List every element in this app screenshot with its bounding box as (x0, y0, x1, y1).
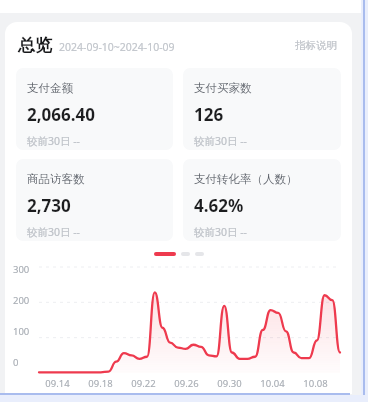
staticText: 10.04 (260, 377, 285, 390)
staticText: 0 (13, 356, 39, 369)
staticText: 10.08 (303, 377, 328, 390)
staticText: 200 (13, 294, 39, 307)
staticText: 300 (13, 263, 39, 276)
staticText: 09.22 (131, 377, 156, 390)
button[interactable]: 指标说明 (293, 36, 339, 55)
staticText: 2,730 (27, 194, 71, 217)
button[interactable]: 支付转化率（人数） (183, 159, 341, 241)
staticText: 支付买家数 (194, 81, 252, 95)
button[interactable] (181, 252, 190, 256)
staticText: 100 (13, 325, 39, 338)
staticText: 支付转化率（人数） (194, 172, 298, 186)
button[interactable]: 支付金额 (16, 68, 173, 150)
staticText: 较前30日 -- (27, 225, 81, 239)
staticText: 126 (194, 103, 224, 126)
staticText: 总览 (18, 35, 52, 56)
staticText: 较前30日 -- (27, 134, 81, 148)
button[interactable] (195, 252, 204, 256)
button[interactable]: 支付买家数 (183, 68, 341, 150)
staticText: 2024-09-10~2024-10-09 (59, 40, 175, 54)
staticText: 较前30日 -- (194, 134, 248, 148)
staticText: 09.26 (174, 377, 199, 390)
button[interactable] (154, 252, 176, 256)
staticText: 指标说明 (295, 39, 337, 52)
staticText: 商品访客数 (27, 172, 85, 186)
staticText: 较前30日 -- (194, 225, 248, 239)
staticText: 09.30 (217, 377, 242, 390)
staticText: 2,066.40 (27, 103, 95, 126)
staticText: 09.14 (45, 377, 70, 390)
staticText: 4.62% (194, 194, 244, 217)
button[interactable]: 商品访客数 (16, 159, 173, 241)
staticText: 09.18 (88, 377, 113, 390)
staticText: 支付金额 (27, 81, 73, 95)
